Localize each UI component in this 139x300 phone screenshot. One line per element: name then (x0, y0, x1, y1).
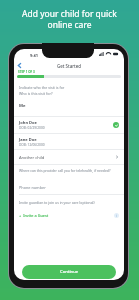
button[interactable]: Continue (22, 265, 116, 279)
button[interactable]: Another child (14, 150, 124, 164)
staticText: Add your child for quick online care (0, 8, 139, 30)
staticText: + Invite a Guest (19, 213, 114, 218)
button[interactable]: Jane Doe (14, 135, 124, 149)
staticText: Phone number (19, 185, 46, 190)
button[interactable]: Back (14, 60, 25, 71)
staticText: Invite guardian to join us in your care … (19, 200, 95, 205)
staticText: Get Started (14, 63, 124, 69)
staticText: DOB: 02/29/2000 (19, 126, 45, 130)
staticText: STEP 1 OF 3 (18, 70, 35, 74)
staticText: Who is this visit for? (19, 91, 53, 96)
staticText: DOB: 12/06/2000 (19, 143, 45, 147)
staticText: Continue (60, 269, 79, 275)
staticText: i (116, 214, 117, 218)
staticText: Me (19, 103, 26, 109)
staticText: Jane Doe (19, 137, 37, 142)
staticText: Indicate who the visit is for (19, 85, 65, 90)
button[interactable]: + Invite a Guest (14, 210, 124, 221)
staticText: John Doe (19, 120, 37, 125)
button[interactable]: Information (114, 213, 119, 218)
button[interactable]: John Doe (14, 118, 124, 132)
staticText: Where can this provider call you for tel… (19, 168, 111, 173)
staticText: Another child (19, 155, 115, 160)
staticText: 9:41 (30, 53, 38, 58)
